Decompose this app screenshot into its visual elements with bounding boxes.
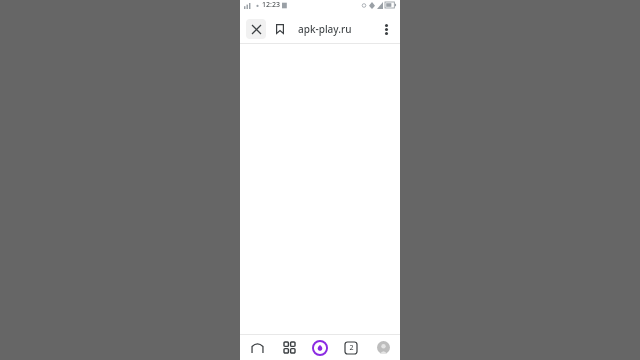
staticText: 12:23 bbox=[262, 0, 280, 10]
button[interactable]: Close bbox=[246, 19, 266, 39]
staticText: 2 bbox=[349, 343, 354, 353]
button[interactable]: Assistant bbox=[306, 335, 334, 360]
button[interactable]: apk-play.ru bbox=[298, 22, 376, 36]
button[interactable]: Bookmark bbox=[270, 19, 290, 39]
button[interactable]: Apps bbox=[275, 335, 303, 360]
button[interactable]: Home bbox=[243, 335, 271, 360]
button[interactable]: Tabs bbox=[337, 335, 365, 360]
button[interactable]: Profile bbox=[369, 335, 397, 360]
button[interactable]: More options bbox=[376, 19, 396, 39]
